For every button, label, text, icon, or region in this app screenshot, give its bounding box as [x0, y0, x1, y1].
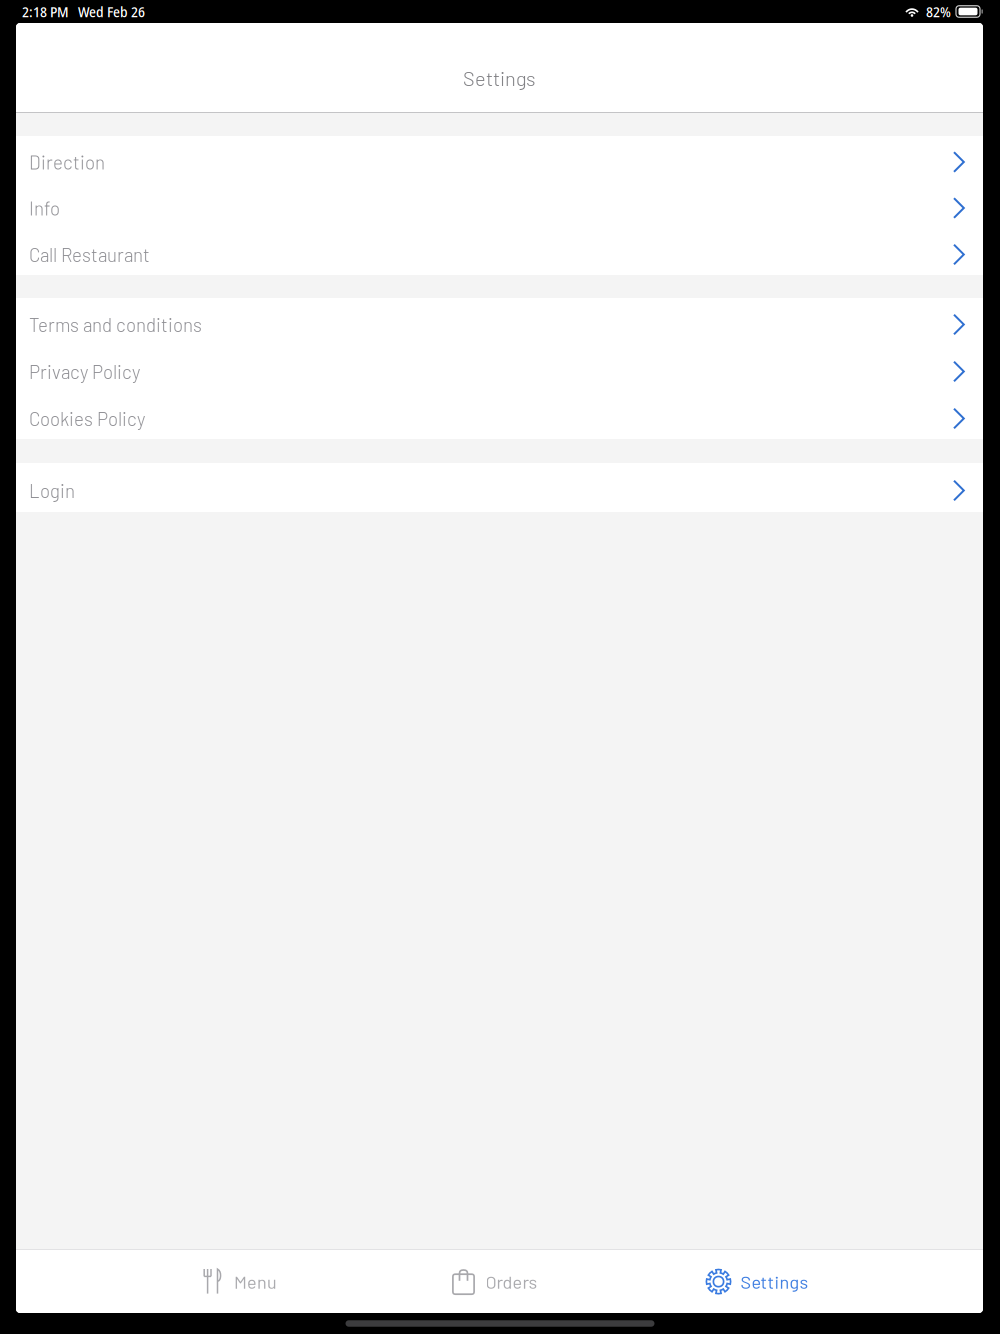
button[interactable]: Terms and conditions: [16, 298, 983, 345]
button[interactable]: Info: [16, 182, 983, 228]
staticText: Privacy Policy: [29, 360, 140, 383]
staticText: 2:18 PM: [22, 1, 69, 21]
button[interactable]: Settings: [619, 1250, 895, 1313]
staticText: 82%: [926, 1, 951, 21]
staticText: Direction: [29, 151, 105, 173]
button[interactable]: Login: [16, 463, 983, 512]
staticText: Wed Feb 26: [78, 1, 145, 21]
staticText: Cookies Policy: [29, 407, 145, 430]
button[interactable]: Orders: [369, 1250, 619, 1313]
staticText: Login: [29, 479, 75, 502]
button[interactable]: Cookies Policy: [16, 392, 983, 439]
staticText: Settings: [740, 1271, 808, 1292]
staticText: Orders: [485, 1271, 537, 1292]
button[interactable]: Direction: [16, 136, 983, 182]
button[interactable]: Call Restaurant: [16, 228, 983, 275]
button[interactable]: Menu: [107, 1250, 369, 1313]
staticText: Info: [29, 197, 60, 219]
staticText: Menu: [234, 1271, 277, 1292]
staticText: Terms and conditions: [29, 313, 202, 336]
button[interactable]: Privacy Policy: [16, 345, 983, 392]
staticText: Settings: [463, 66, 536, 90]
staticText: Call Restaurant: [29, 243, 150, 266]
